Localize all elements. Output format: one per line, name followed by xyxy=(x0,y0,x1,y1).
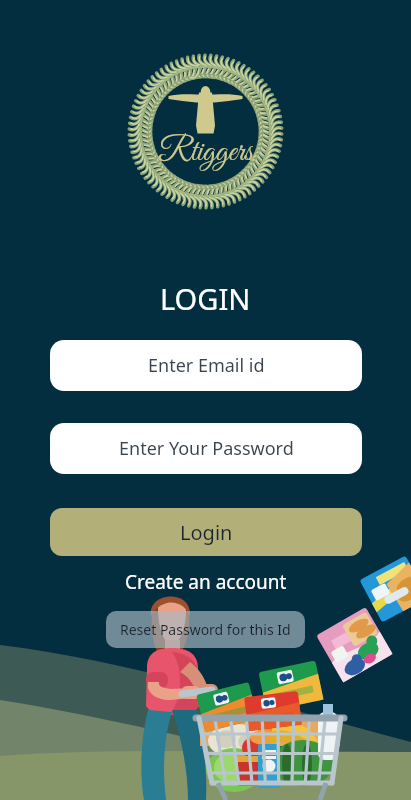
staticText: Rtiggers xyxy=(158,133,254,173)
button[interactable]: Create an account xyxy=(119,567,293,597)
staticText: Reset Password for this Id xyxy=(120,620,291,639)
button[interactable]: Reset Password for this Id xyxy=(106,611,305,648)
button[interactable]: Login xyxy=(50,508,362,556)
button[interactable]: Enter Your Password xyxy=(50,423,362,474)
staticText: Login xyxy=(180,519,233,546)
staticText: Create an account xyxy=(125,569,287,595)
staticText: LOGIN xyxy=(160,279,251,318)
staticText: Enter Email id xyxy=(148,353,265,378)
button[interactable]: Enter Email id xyxy=(50,340,362,391)
staticText: Enter Your Password xyxy=(119,436,294,461)
